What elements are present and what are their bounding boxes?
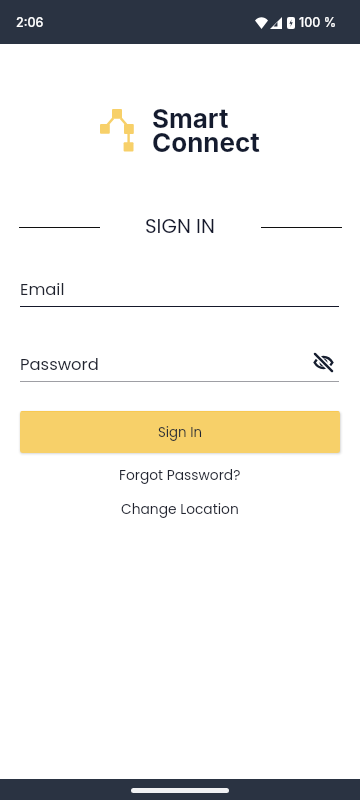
staticText: Email xyxy=(20,278,65,301)
staticText: Change Location xyxy=(121,500,239,519)
staticText: SIGN IN xyxy=(145,212,215,240)
button[interactable]: Sign In xyxy=(20,411,340,453)
staticText: 2:06 xyxy=(16,15,44,30)
staticText: Forgot Password? xyxy=(119,466,241,485)
button[interactable]: Password xyxy=(20,351,339,382)
staticText: 100 % xyxy=(299,15,337,30)
button[interactable]: Forgot Password? xyxy=(109,463,251,488)
staticText: Password xyxy=(20,353,313,376)
staticText: Smart Connect xyxy=(152,103,260,158)
button[interactable]: Show password xyxy=(310,349,336,375)
button[interactable]: Change Location xyxy=(111,497,249,522)
staticText: Sign In xyxy=(158,423,202,442)
button[interactable]: Email xyxy=(20,278,339,307)
